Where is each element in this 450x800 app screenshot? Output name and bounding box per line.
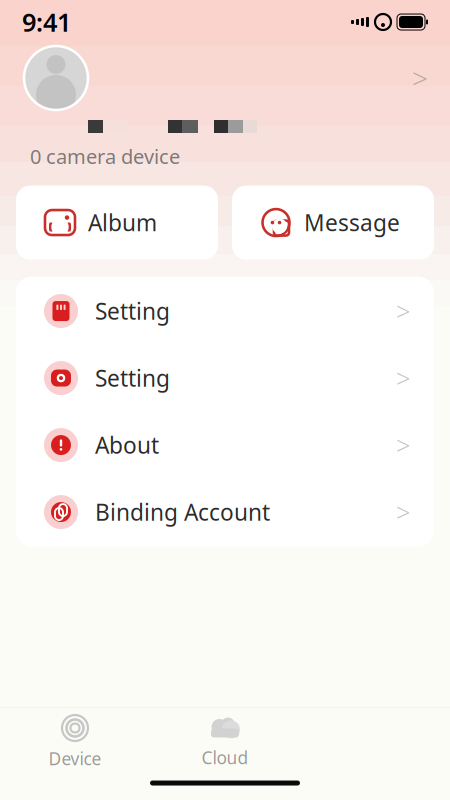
staticText: Cloud bbox=[201, 746, 248, 769]
staticText: 0 camera device bbox=[30, 143, 180, 170]
staticText: Message bbox=[304, 207, 400, 238]
button[interactable]: Setting bbox=[16, 345, 434, 412]
staticText: Album bbox=[88, 207, 157, 238]
staticText: > bbox=[412, 59, 428, 97]
staticText: Setting bbox=[95, 296, 170, 326]
button[interactable]: About bbox=[16, 412, 434, 479]
button[interactable]: Setting bbox=[16, 278, 434, 345]
staticText: Device bbox=[48, 747, 101, 770]
button[interactable]: Binding Account bbox=[16, 479, 434, 546]
button[interactable]: Album bbox=[16, 186, 218, 260]
staticText: > bbox=[396, 294, 410, 328]
staticText: 9:41 bbox=[22, 5, 71, 39]
staticText: Setting bbox=[95, 363, 170, 393]
button[interactable]: Cloud bbox=[150, 705, 300, 769]
button[interactable]: Message bbox=[232, 186, 434, 260]
staticText: > bbox=[396, 361, 410, 395]
staticText: > bbox=[396, 495, 410, 529]
staticText: About bbox=[95, 430, 159, 460]
staticText: Binding Account bbox=[95, 497, 270, 527]
button[interactable]: > bbox=[0, 44, 450, 112]
button[interactable]: Device bbox=[0, 704, 150, 770]
staticText: > bbox=[396, 428, 410, 462]
